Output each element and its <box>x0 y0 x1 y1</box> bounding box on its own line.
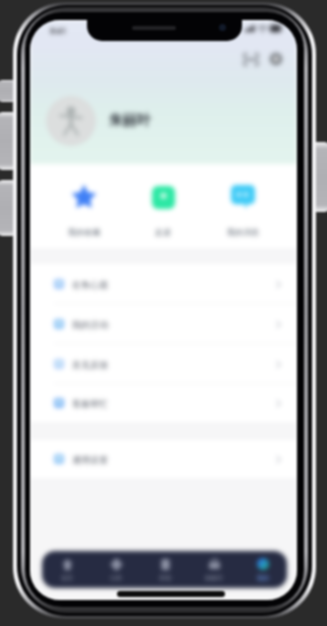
staticText: 足迹 <box>155 227 171 237</box>
staticText: 分类 <box>110 574 122 582</box>
staticText: 在售心愿 <box>72 279 108 290</box>
staticText: 我的消息 <box>227 227 259 237</box>
button[interactable]: 足迹 <box>123 184 203 237</box>
button[interactable]: 首页 <box>42 551 91 588</box>
staticText: 发现 <box>159 574 171 582</box>
staticText: 朱丽叶 <box>109 112 151 130</box>
button[interactable]: 意见反馈 <box>30 344 297 384</box>
button[interactable]: 我的活动 <box>30 304 297 344</box>
staticText: 通用设置 <box>72 454 108 465</box>
button[interactable]: 在售心愿 <box>30 264 297 304</box>
button[interactable]: 购物车 <box>189 551 238 588</box>
button[interactable]: Settings <box>268 51 284 67</box>
staticText: 我的活动 <box>72 319 108 330</box>
button[interactable]: 客服帮忙 <box>30 384 297 422</box>
staticText: 首页 <box>61 574 73 582</box>
button[interactable]: Scan code <box>242 52 260 66</box>
button[interactable]: 分类 <box>91 551 140 588</box>
button[interactable]: 发现 <box>140 551 189 588</box>
staticText: 我的收藏 <box>68 227 100 237</box>
button[interactable]: 我的 <box>238 551 287 588</box>
staticText: 购物车 <box>205 574 223 582</box>
staticText: 意见反馈 <box>72 359 108 370</box>
button[interactable]: 我的消息 <box>203 184 283 237</box>
button[interactable]: 我的收藏 <box>44 184 123 237</box>
button[interactable]: 通用设置 <box>30 440 297 478</box>
staticText: 9:41 <box>50 25 66 36</box>
staticText: 客服帮忙 <box>72 398 108 409</box>
staticText: 我的 <box>257 574 269 582</box>
